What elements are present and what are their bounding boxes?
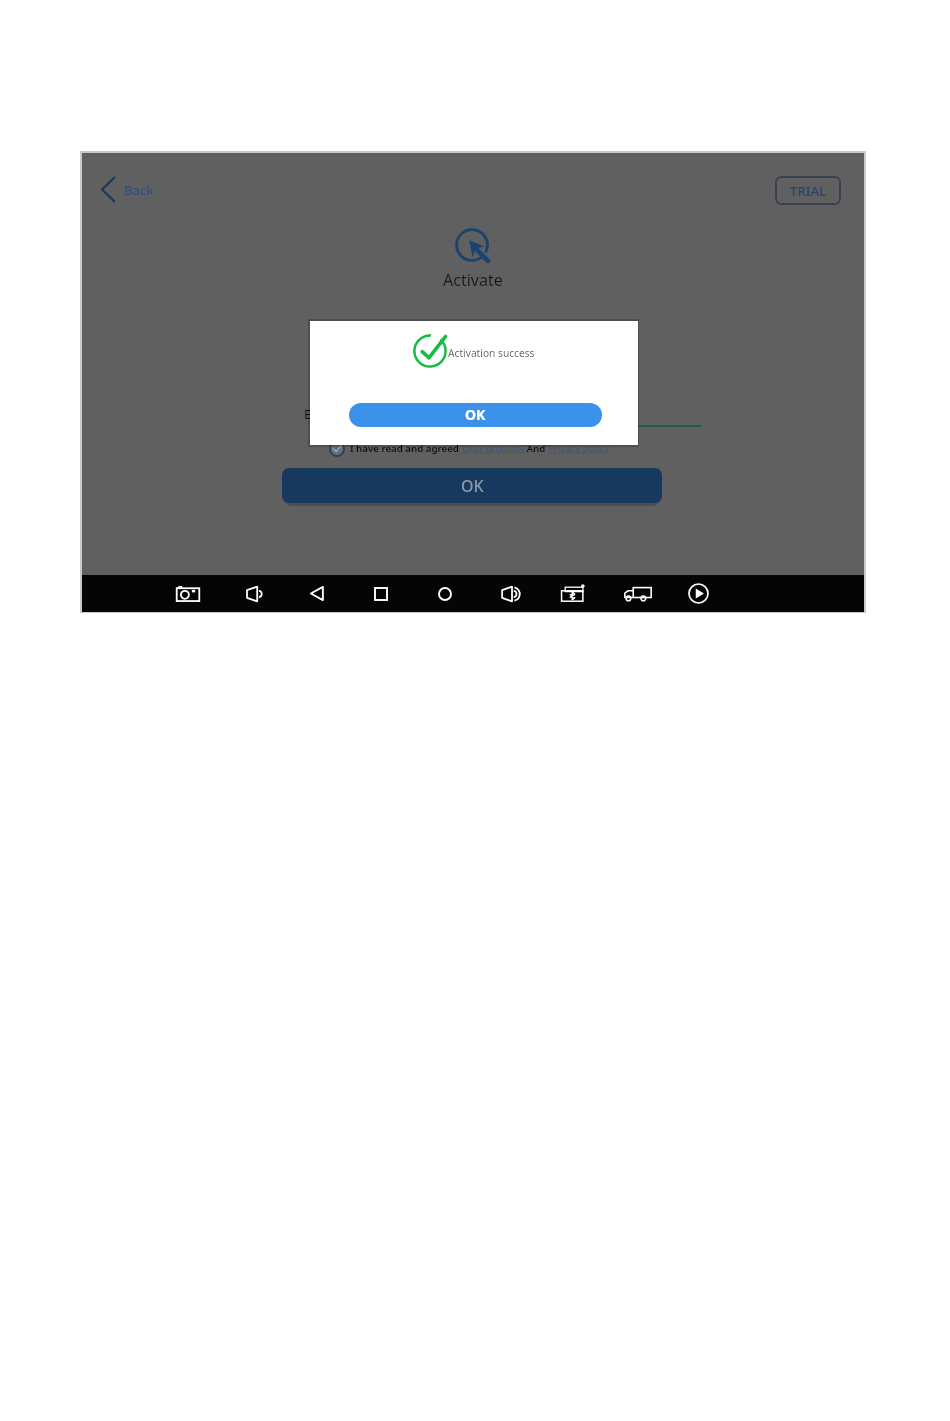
staticText: Enter activation code (304, 405, 433, 423)
button[interactable]: Volume down (236, 575, 272, 612)
button[interactable]: OK (349, 403, 602, 427)
button[interactable]: Back (299, 575, 335, 612)
staticText: User protocol (462, 442, 524, 455)
staticText: Activate (443, 269, 503, 291)
button[interactable]: Back (100, 175, 154, 204)
button[interactable]: Home (427, 575, 463, 612)
button[interactable]: Car (620, 575, 656, 612)
staticText: Back (124, 181, 154, 199)
button[interactable]: Volume up (492, 575, 528, 612)
staticText: Activation success (448, 346, 535, 360)
staticText: OK (461, 475, 484, 497)
staticText: And (524, 442, 548, 455)
staticText: OK (465, 405, 486, 424)
button[interactable]: Bluetooth cast (555, 575, 591, 612)
button[interactable]: Play (680, 575, 716, 612)
button[interactable]: I have read and agreed (329, 440, 617, 458)
staticText: TRIAL (790, 182, 827, 200)
button[interactable]: Recents (363, 575, 399, 612)
staticText: I have read and agreed (350, 442, 462, 455)
button[interactable]: Screenshot (170, 575, 206, 612)
button[interactable]: TRIAL (775, 176, 841, 205)
button[interactable]: OK (282, 468, 662, 503)
staticText: Privacy policy (548, 442, 610, 455)
